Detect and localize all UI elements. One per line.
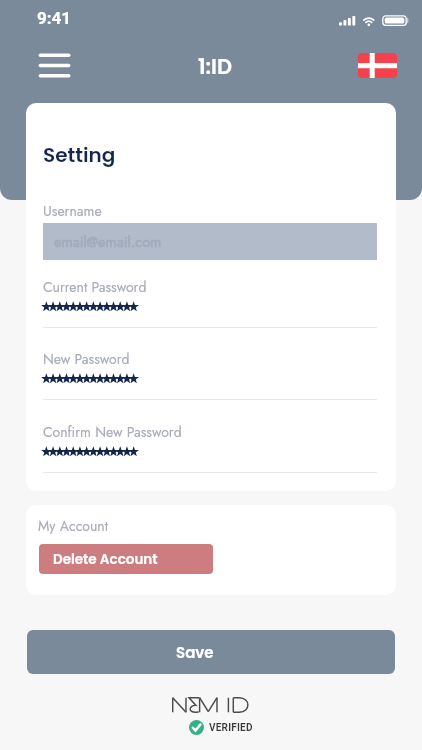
staticText: 1:ID (198, 52, 233, 81)
button[interactable]: Delete Account (39, 544, 213, 574)
button[interactable]: Select language (358, 53, 397, 78)
staticText: Username (43, 201, 102, 221)
staticText: Save (176, 642, 214, 663)
staticText: New Password (43, 349, 130, 369)
button[interactable]: Open navigation menu (33, 48, 76, 82)
staticText: email@email.com (54, 231, 162, 252)
staticText: VERIFIED (209, 722, 253, 734)
staticText: Confirm New Password (43, 422, 182, 442)
staticText: Delete Account (53, 550, 158, 569)
staticText: Setting (43, 141, 116, 169)
staticText: Current Password (43, 277, 147, 297)
staticText: 9:41 (37, 8, 72, 28)
button[interactable]: Save (27, 630, 395, 674)
staticText: My Account (38, 516, 109, 536)
